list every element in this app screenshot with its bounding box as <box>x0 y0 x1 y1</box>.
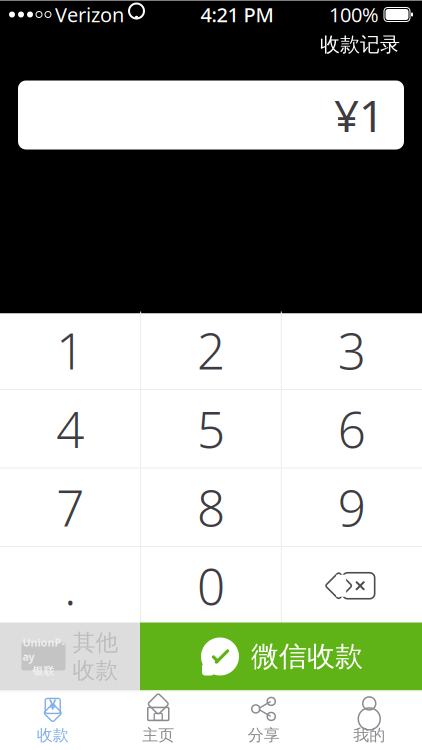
button[interactable]: ¥ <box>0 691 105 749</box>
button[interactable]: ¥1 <box>18 80 404 149</box>
button[interactable]: 我的 <box>316 691 422 749</box>
button[interactable]: 3 <box>282 311 421 389</box>
staticText: 8 <box>197 474 225 540</box>
staticText: UnionPay <box>22 635 64 664</box>
button[interactable]: 5 <box>141 390 281 467</box>
staticText: 2 <box>197 317 225 383</box>
staticText: 6 <box>338 396 366 461</box>
button[interactable]: Delete <box>282 547 421 624</box>
button[interactable]: UnionPay <box>0 622 140 690</box>
staticText: 收款 <box>37 725 69 745</box>
staticText: 9 <box>338 474 366 540</box>
staticText: 收款 <box>72 656 118 684</box>
staticText: 4:21 PM <box>200 1 273 28</box>
staticText: 1 <box>56 317 84 383</box>
staticText: 3 <box>338 317 366 383</box>
button[interactable]: 主页 <box>105 691 211 749</box>
staticText: 7 <box>56 474 84 540</box>
button[interactable]: 微信收款 <box>140 622 422 690</box>
staticText: ¥1 <box>334 86 384 144</box>
button[interactable]: 9 <box>282 468 421 546</box>
button[interactable]: 2 <box>141 311 281 389</box>
staticText: ¥ <box>49 696 57 713</box>
staticText: 0 <box>197 553 225 618</box>
button[interactable]: 收款记录 <box>308 26 412 63</box>
staticText: 分享 <box>248 725 280 745</box>
button[interactable]: . <box>0 547 140 624</box>
staticText: 其他 <box>72 629 118 656</box>
button[interactable]: 8 <box>141 468 281 546</box>
staticText: 主页 <box>142 725 174 745</box>
staticText: 4 <box>56 396 84 461</box>
staticText: . <box>64 553 76 618</box>
button[interactable]: 0 <box>141 547 281 624</box>
button[interactable]: 1 <box>0 311 140 389</box>
staticText: 微信收款 <box>251 639 363 674</box>
staticText: 100% <box>329 1 379 28</box>
staticText: Verizon <box>55 1 124 28</box>
staticText: 收款记录 <box>320 32 400 57</box>
staticText: 5 <box>197 396 225 461</box>
staticText: 我的 <box>353 725 385 745</box>
button[interactable]: 4 <box>0 390 140 467</box>
button[interactable]: 6 <box>282 390 421 467</box>
staticText: 银联 <box>32 665 54 678</box>
button[interactable]: 分享 <box>211 691 316 749</box>
button[interactable]: 7 <box>0 468 140 546</box>
